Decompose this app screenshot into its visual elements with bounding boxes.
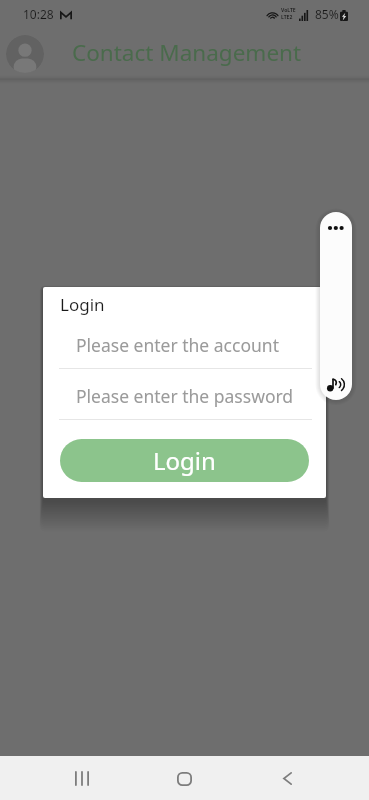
staticText: 10:28 (23, 6, 54, 22)
staticText: LTE2 (281, 14, 293, 21)
staticText: Contact Management (72, 37, 302, 68)
staticText: Please enter the password (76, 384, 294, 408)
staticText: Please enter the account (76, 333, 279, 357)
button[interactable]: Edge panel (320, 212, 352, 400)
staticText: 85% (315, 6, 339, 22)
staticText: Login (153, 444, 216, 477)
button[interactable]: Recents (53, 762, 110, 795)
staticText: VoLTE (281, 7, 296, 14)
button[interactable]: Login (60, 439, 309, 482)
button[interactable]: Back (259, 762, 316, 795)
button[interactable]: Home (156, 762, 213, 795)
button[interactable]: Profile (6, 35, 44, 73)
staticText: Login (60, 293, 105, 316)
